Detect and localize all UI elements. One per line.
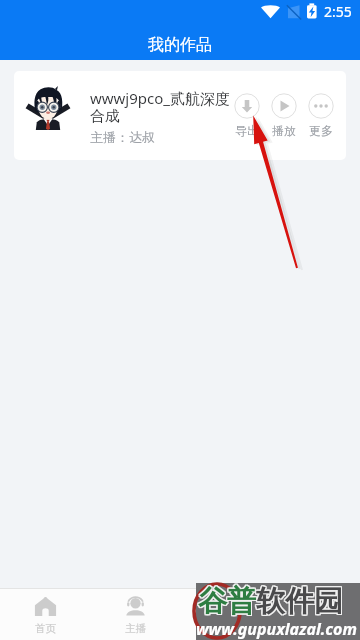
staticText: 发现 [215, 623, 236, 636]
other: Annotation arrow [0, 0, 360, 640]
staticText: 谷普软件园 [199, 582, 344, 619]
button[interactable]: 主播 [90, 589, 180, 640]
staticText: 谷普软件园 [198, 582, 343, 619]
staticText: www.gupuxlazal.com [196, 618, 357, 640]
button[interactable]: 我的 [270, 589, 360, 640]
button[interactable]: 更多 [308, 93, 334, 138]
button[interactable]: 播放 [271, 93, 297, 138]
button[interactable]: 导出 [234, 93, 260, 138]
staticText: 2:55 [324, 2, 352, 21]
staticText: 谷普软件园 [197, 582, 342, 619]
staticText: 更多 [309, 123, 333, 138]
button[interactable]: 首页 [0, 589, 90, 640]
staticText: 软件园 [256, 583, 343, 620]
button[interactable]: wwwj9pco_贰航深度合成 [14, 71, 346, 160]
staticText: 主播 [125, 622, 146, 635]
staticText: 播放 [272, 123, 296, 138]
staticText: 谷普软件园 [198, 584, 343, 621]
button[interactable]: 发现 [180, 589, 270, 640]
staticText: 我的作品 [148, 35, 212, 55]
staticText: 谷普软件园 [199, 583, 344, 620]
staticText: 首页 [35, 622, 56, 635]
staticText: 导出 [235, 123, 259, 138]
staticText: wwwj9pco_贰航深度合成 [90, 88, 232, 125]
staticText: 我的 [305, 623, 326, 636]
staticText: 谷普软件园 [197, 583, 342, 620]
staticText: 谷普 [198, 583, 256, 620]
staticText: 谷普软件园 [197, 584, 342, 621]
staticText: 主播：达叔 [90, 129, 155, 145]
staticText: 谷普软件园 [199, 584, 344, 621]
